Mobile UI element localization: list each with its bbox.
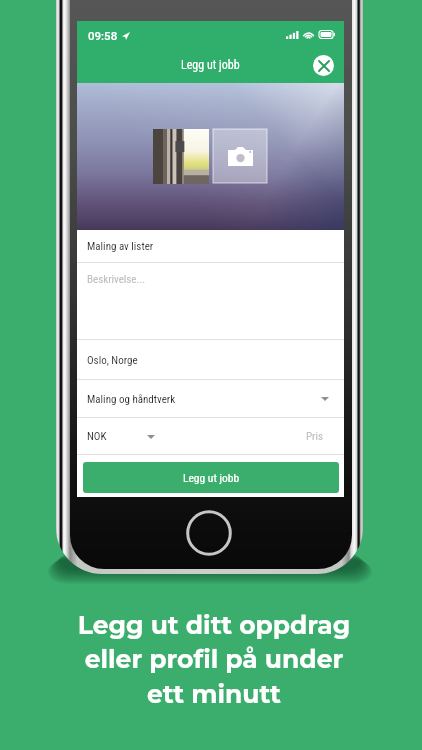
button[interactable]: Photo xyxy=(153,129,209,184)
staticText: Maling og håndtverk xyxy=(87,393,176,406)
staticText: NOK xyxy=(87,430,107,443)
staticText: 09:58 xyxy=(88,29,118,42)
button[interactable]: Legg ut jobb xyxy=(83,462,339,493)
staticText: Pris xyxy=(306,430,323,443)
staticText: Legg ut jobb xyxy=(181,58,240,72)
staticText: Legg ut jobb xyxy=(183,471,240,484)
staticText: Maling av lister xyxy=(87,240,154,253)
button[interactable]: NOK xyxy=(77,418,344,455)
button[interactable]: Beskrivelse... xyxy=(77,263,344,340)
button[interactable]: Close xyxy=(313,55,334,76)
button[interactable]: Add photo xyxy=(213,129,267,183)
button[interactable]: Maling og håndtverk xyxy=(77,380,344,418)
staticText: Oslo, Norge xyxy=(87,354,138,367)
button[interactable]: Maling av lister xyxy=(77,230,344,263)
button[interactable]: Oslo, Norge xyxy=(77,340,344,380)
staticText: Legg ut ditt oppdrag eller profil på und… xyxy=(3,610,422,710)
staticText: Beskrivelse... xyxy=(87,273,146,286)
